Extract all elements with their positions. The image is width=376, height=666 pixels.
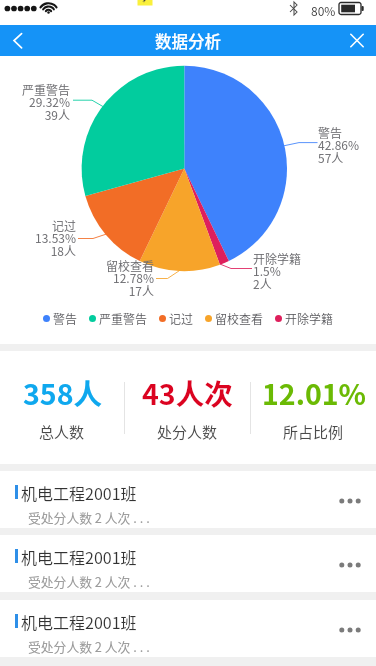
staticText: 处分人数 (157, 421, 218, 443)
staticText: 43人次 (142, 372, 233, 413)
button[interactable]: 机电工程2001班 (0, 535, 376, 592)
staticText: 机电工程2001班 (21, 545, 137, 568)
button[interactable]: 358人 (0, 351, 124, 464)
staticText: 记过 (169, 310, 194, 327)
staticText: 总人数 (39, 421, 85, 443)
staticText: 受处分人数 2 人次 . . . (28, 637, 150, 656)
staticText: 记过 13.53% 18人 (6, 217, 76, 260)
button[interactable]: 43人次 (125, 351, 250, 464)
button[interactable]: 记过 (159, 310, 194, 327)
button[interactable]: Back (0, 25, 40, 56)
staticText: 数据分析 (155, 29, 221, 53)
staticText: 358人 (23, 372, 102, 413)
button[interactable]: 留校查看 (205, 310, 264, 327)
staticText: 留校查看 (215, 310, 264, 327)
staticText: 受处分人数 2 人次 . . . (28, 508, 150, 527)
staticText: 警告 42.86% 57人 (318, 124, 376, 167)
staticText: 严重警告 (99, 310, 148, 327)
button[interactable]: 机电工程2001班 (0, 600, 376, 657)
button[interactable]: 严重警告 (89, 310, 148, 327)
staticText: 所占比例 (283, 421, 344, 443)
staticText: 留校查看 12.78% 17人 (81, 257, 154, 300)
button[interactable]: More options (328, 600, 376, 657)
staticText: 严重警告 29.32% 39人 (4, 81, 70, 124)
staticText: 开除学籍 (285, 310, 334, 327)
button[interactable]: 机电工程2001班 (0, 471, 376, 528)
button[interactable]: 警告 (43, 310, 78, 327)
staticText: 受处分人数 2 人次 . . . (28, 572, 150, 591)
staticText: 机电工程2001班 (21, 481, 137, 504)
staticText: 80% (311, 2, 336, 19)
button[interactable]: More options (328, 535, 376, 592)
button[interactable]: More options (328, 471, 376, 528)
staticText: 开除学籍 1.5% 2人 (253, 250, 317, 293)
staticText: 12.01% (262, 372, 366, 413)
staticText: 机电工程2001班 (21, 610, 137, 633)
staticText: 警告 (53, 310, 78, 327)
button[interactable]: 开除学籍 (275, 310, 334, 327)
button[interactable]: 12.01% (251, 351, 376, 464)
button[interactable]: Close (336, 25, 376, 56)
